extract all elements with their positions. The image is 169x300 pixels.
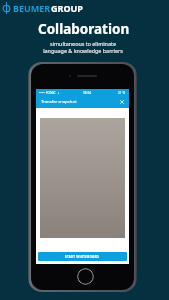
staticText: GROUP <box>51 2 83 14</box>
staticText: 21 % <box>118 91 126 95</box>
staticText: BEUMER <box>13 2 51 14</box>
staticText: ••••• FONIC <box>39 91 56 95</box>
staticText: 10:14 <box>83 91 92 95</box>
staticText: START WHITEBOARD <box>65 255 100 259</box>
staticText: Transfer snapshot <box>41 99 77 105</box>
staticText: Collaboration <box>38 20 130 38</box>
button[interactable]: Close <box>119 99 125 105</box>
staticText: simultaneous to eliminate language & kno… <box>43 40 123 55</box>
button[interactable]: Home <box>77 268 94 285</box>
button[interactable]: START WHITEBOARD <box>38 252 127 261</box>
